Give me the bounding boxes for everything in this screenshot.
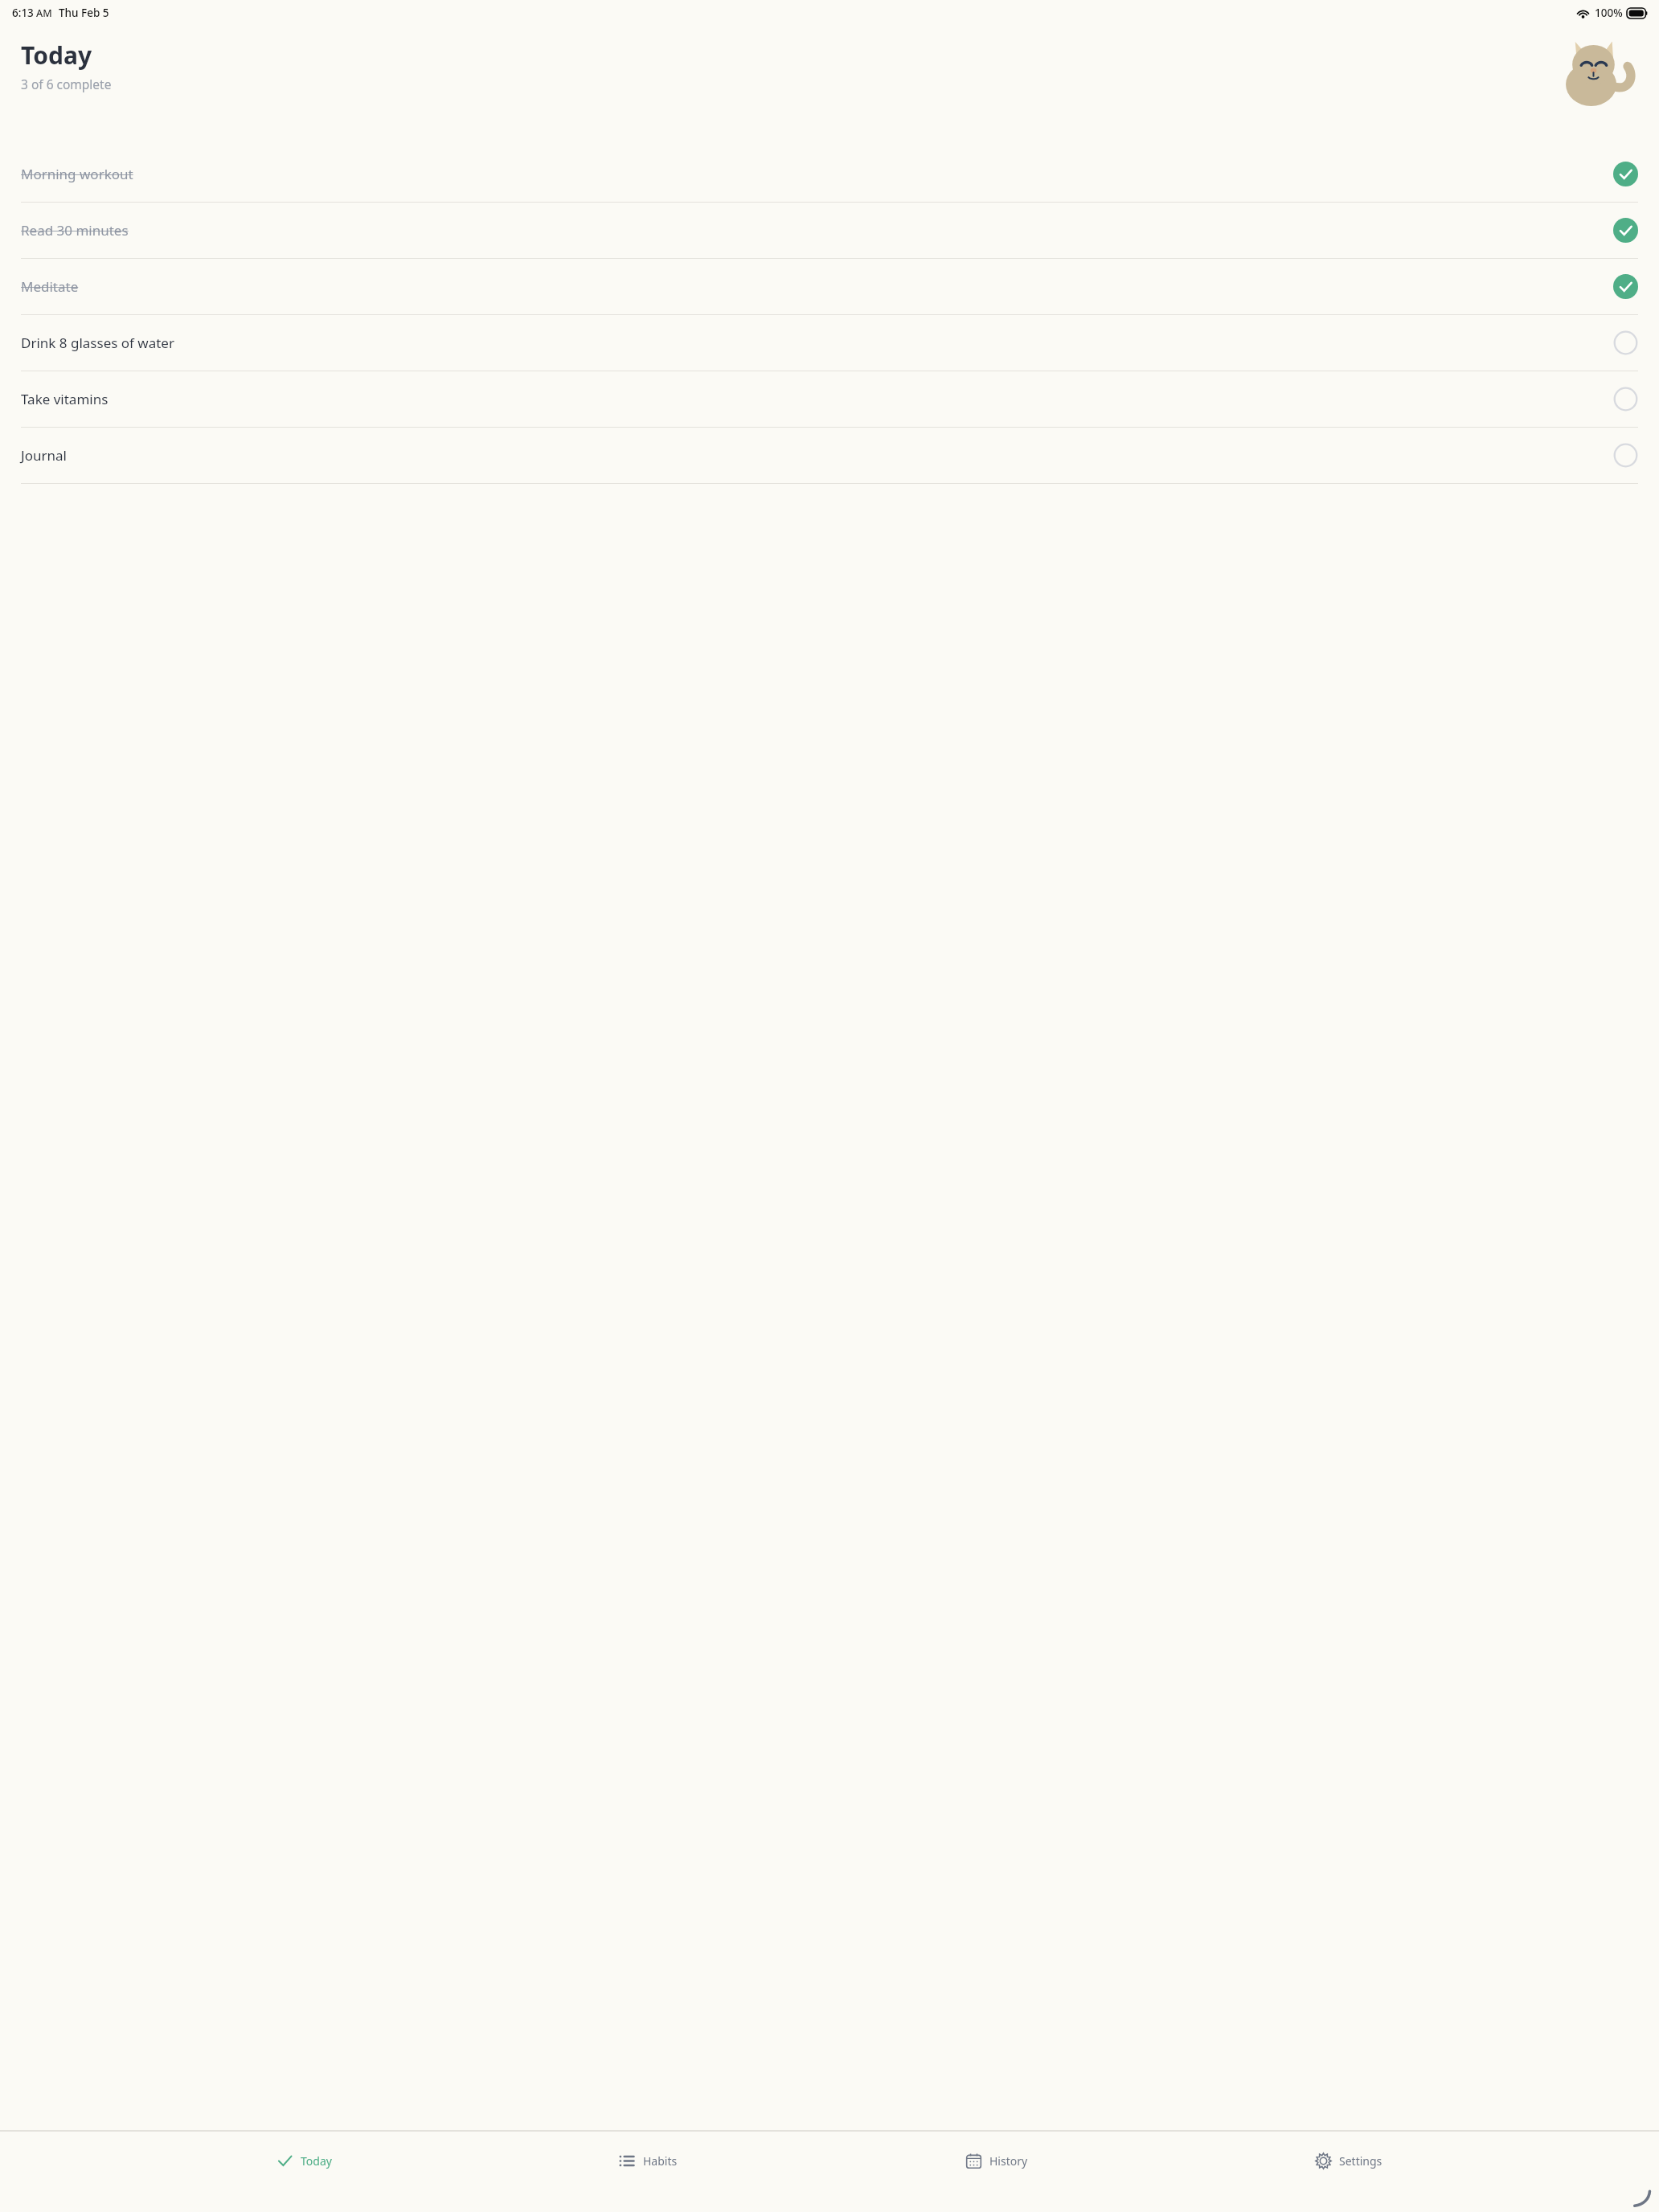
staticText: 3 of 6 complete bbox=[21, 76, 112, 92]
staticText: Habits bbox=[643, 2153, 678, 2169]
button[interactable]: Drink 8 glasses of water bbox=[0, 315, 1659, 371]
staticText: Drink 8 glasses of water bbox=[21, 334, 174, 352]
staticText: Settings bbox=[1339, 2153, 1382, 2169]
button[interactable]: Morning workout bbox=[0, 146, 1659, 203]
staticText: Morning workout bbox=[21, 165, 133, 183]
staticText: 6:13 bbox=[12, 6, 34, 20]
staticText: History bbox=[989, 2153, 1028, 2169]
button[interactable]: Today bbox=[265, 2144, 343, 2177]
staticText: 100% bbox=[1595, 6, 1623, 20]
staticText: Take vitamins bbox=[21, 390, 109, 408]
button[interactable]: Settings bbox=[1304, 2144, 1394, 2177]
staticText: Today bbox=[301, 2153, 332, 2169]
staticText: Today bbox=[21, 39, 92, 72]
button[interactable]: Take vitamins bbox=[0, 371, 1659, 428]
button[interactable]: Journal bbox=[0, 428, 1659, 484]
button[interactable]: Read 30 minutes bbox=[0, 203, 1659, 259]
staticText: AM bbox=[36, 6, 52, 20]
staticText: Meditate bbox=[21, 277, 79, 296]
staticText: Journal bbox=[21, 446, 67, 465]
button[interactable]: History bbox=[954, 2144, 1039, 2177]
staticText: Thu Feb 5 bbox=[59, 6, 109, 20]
button[interactable]: Habits bbox=[608, 2144, 689, 2177]
button[interactable]: Meditate bbox=[0, 259, 1659, 315]
staticText: Read 30 minutes bbox=[21, 221, 129, 240]
